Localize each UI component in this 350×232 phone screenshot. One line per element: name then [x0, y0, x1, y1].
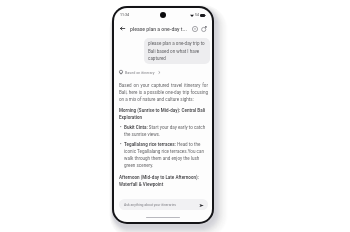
staticText: Tegallalang rice terraces: Head to the i…: [124, 142, 208, 169]
staticText: •: [120, 142, 122, 147]
button[interactable]: Send: [198, 202, 204, 208]
button[interactable]: Info: [191, 25, 199, 33]
staticText: 11:34: [120, 13, 130, 17]
staticText: Based on your captured travel itinerary …: [119, 83, 208, 103]
staticText: please plan a one-day t...: [130, 26, 190, 32]
button[interactable]: Based on itinerary: [119, 70, 161, 75]
button[interactable]: Ask anything about your itineraries: [119, 199, 208, 210]
staticText: Morning (Sunrise to Mid-day): Central Ba…: [119, 108, 208, 121]
button[interactable]: Share: [200, 25, 208, 33]
staticText: Based on itinerary: [125, 71, 155, 75]
staticText: Afternoon (Mid-day to Late Afternoon): W…: [119, 175, 208, 188]
staticText: •: [120, 125, 122, 130]
staticText: Bukit Cinta: Start your day early to cat…: [124, 125, 208, 138]
staticText: 54: [195, 13, 199, 17]
staticText: Ask anything about your itineraries: [124, 203, 198, 207]
button[interactable]: Back: [118, 24, 127, 33]
staticText: please plan a one-day trip to Bali based…: [148, 41, 206, 61]
